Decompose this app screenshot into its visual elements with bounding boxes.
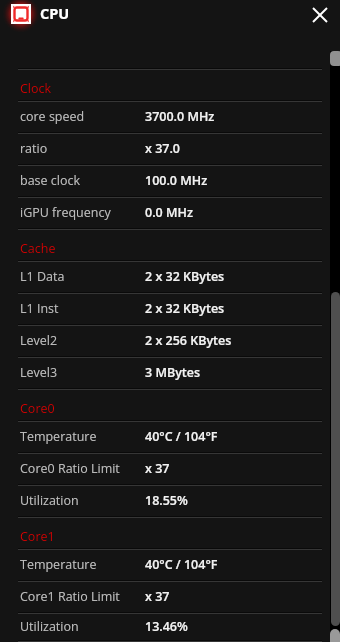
staticText: 3700.0 MHz [145, 108, 215, 125]
staticText: Core1 Ratio Limit [20, 588, 145, 605]
button[interactable]: Temperature [0, 550, 340, 582]
staticText: Level3 [20, 364, 145, 381]
staticText: core speed [20, 108, 145, 125]
button[interactable]: Level2 [0, 326, 340, 358]
staticText: iGPU frequency [20, 204, 145, 221]
button[interactable]: Utilization [0, 614, 340, 642]
button[interactable]: Temperature [0, 422, 340, 454]
staticText: Temperature [20, 428, 145, 445]
staticText: Utilization [20, 618, 145, 635]
staticText: 100.0 MHz [145, 172, 208, 189]
button[interactable]: Utilization [0, 486, 340, 518]
staticText: Cache [20, 240, 56, 257]
button[interactable]: Core1 Ratio Limit [0, 582, 340, 614]
staticText: 3 MBytes [145, 364, 201, 381]
button[interactable]: base clock [0, 166, 340, 198]
button[interactable]: Core1 [0, 518, 340, 550]
button[interactable]: Core0 [0, 390, 340, 422]
staticText: Core0 Ratio Limit [20, 460, 145, 477]
staticText: ratio [20, 140, 145, 157]
staticText: 40°C / 104°F [145, 428, 218, 445]
button[interactable]: Core0 Ratio Limit [0, 454, 340, 486]
staticText: Temperature [20, 556, 145, 573]
staticText: Level2 [20, 332, 145, 349]
staticText: 2 x 32 KBytes [145, 268, 225, 285]
staticText: base clock [20, 172, 145, 189]
staticText: 0.0 MHz [145, 204, 193, 221]
staticText: x 37.0 [145, 140, 180, 157]
staticText: Utilization [20, 492, 145, 509]
staticText: Core1 [20, 528, 55, 545]
button[interactable]: L1 Data [0, 262, 340, 294]
staticText: L1 Data [20, 268, 145, 285]
button[interactable]: L1 Inst [0, 294, 340, 326]
staticText: 2 x 32 KBytes [145, 300, 225, 317]
staticText: CPU [40, 4, 70, 24]
staticText: 18.55% [145, 492, 188, 509]
staticText: x 37 [145, 460, 170, 477]
button[interactable]: Close [306, 1, 334, 29]
staticText: 13.46% [145, 618, 188, 635]
button[interactable]: Cache [0, 230, 340, 262]
button[interactable]: iGPU frequency [0, 198, 340, 230]
button[interactable]: ratio [0, 134, 340, 166]
button[interactable]: core speed [0, 102, 340, 134]
staticText: 2 x 256 KBytes [145, 332, 232, 349]
button[interactable]: Level3 [0, 358, 340, 390]
staticText: Clock [20, 80, 52, 97]
staticText: x 37 [145, 588, 170, 605]
staticText: 40°C / 104°F [145, 556, 218, 573]
staticText: L1 Inst [20, 300, 145, 317]
staticText: Core0 [20, 400, 55, 417]
button[interactable]: Clock [0, 70, 340, 102]
